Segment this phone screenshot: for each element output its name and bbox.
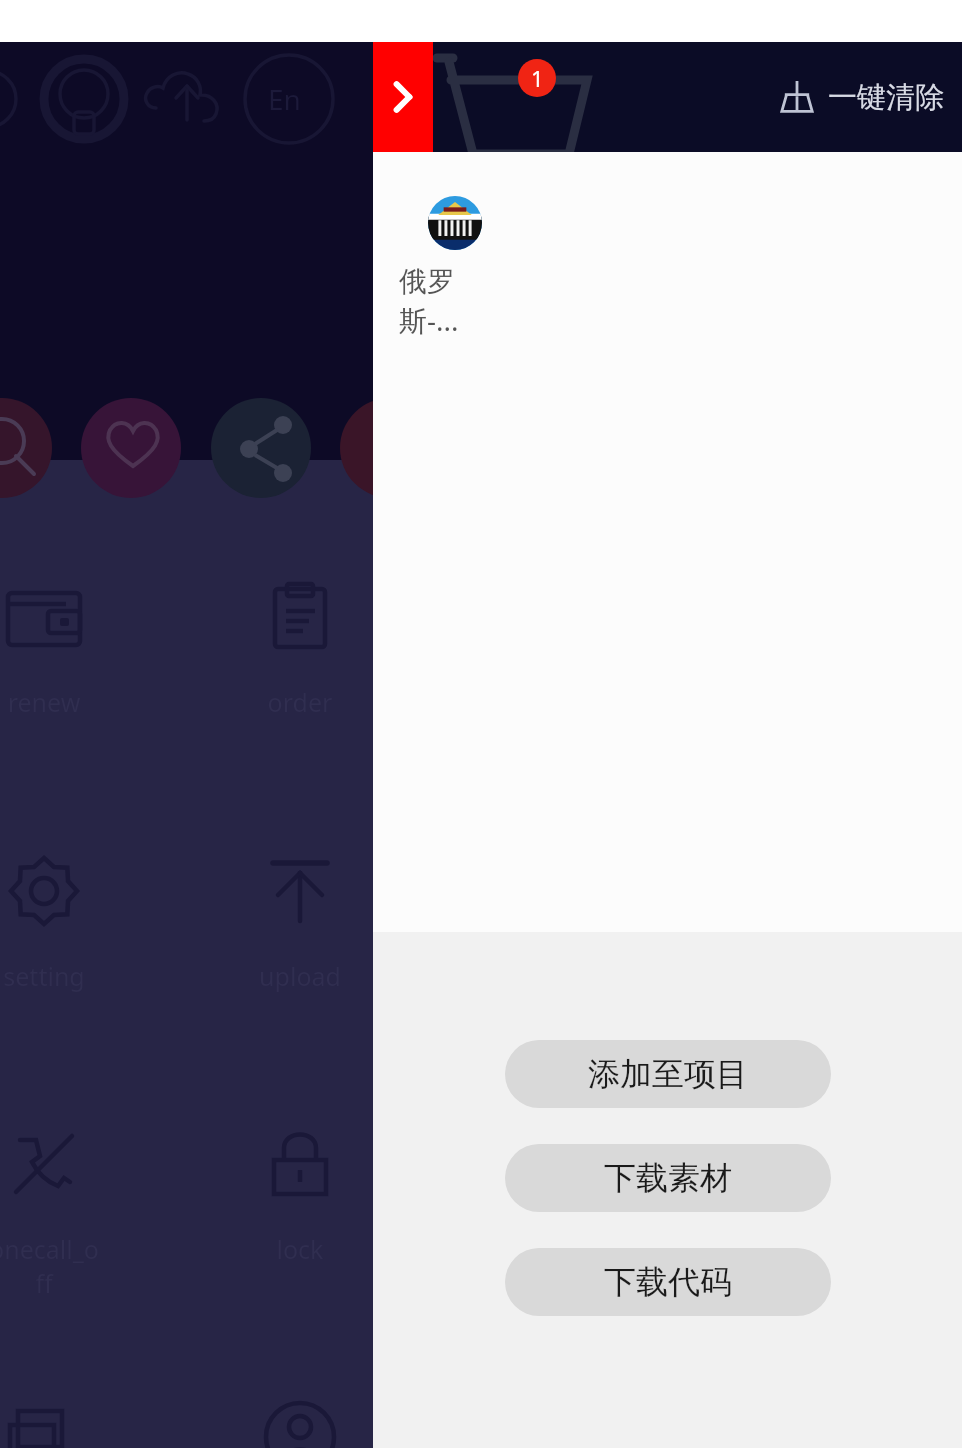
button[interactable]: 下载代码 — [505, 1248, 831, 1316]
button[interactable]: more — [340, 398, 440, 498]
staticText: En — [268, 80, 301, 118]
staticText: 下载代码 — [604, 1262, 732, 1302]
button[interactable]: 添加至项目 — [505, 1040, 831, 1108]
staticText: 1 — [531, 63, 544, 93]
staticText: 添加至项目 — [588, 1054, 748, 1094]
button[interactable]: 一键清除 — [772, 72, 950, 122]
button[interactable]: share — [211, 398, 311, 498]
staticText: 下载素材 — [604, 1158, 732, 1198]
button[interactable]: 下载素材 — [505, 1144, 831, 1212]
button[interactable]: 俄罗斯-... — [395, 192, 515, 343]
button[interactable]: Collapse cart — [373, 42, 433, 152]
staticText: 俄罗斯-... — [399, 264, 511, 339]
button[interactable]: search — [0, 398, 52, 498]
staticText: 一键清除 — [828, 79, 944, 116]
button[interactable]: favorite — [81, 398, 181, 498]
